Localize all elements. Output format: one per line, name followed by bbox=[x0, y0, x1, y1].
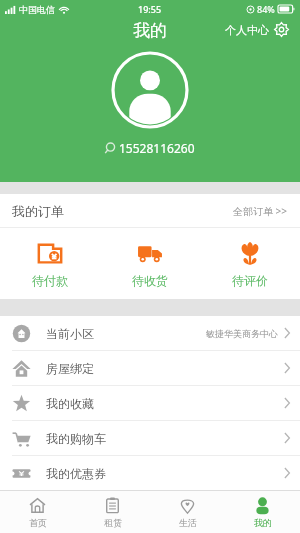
button[interactable]: 首页 bbox=[0, 491, 75, 533]
staticText: 我的优惠券 bbox=[46, 466, 106, 481]
staticText: 我的收藏 bbox=[46, 396, 94, 411]
button[interactable]: 我的收藏 bbox=[0, 386, 300, 420]
staticText: 15528116260 bbox=[119, 140, 195, 156]
staticText: 待评价 bbox=[232, 273, 268, 288]
staticText: 待付款 bbox=[32, 273, 68, 288]
staticText: 待收货 bbox=[132, 273, 168, 288]
button[interactable]: Avatar bbox=[111, 51, 189, 129]
button[interactable]: 待收货 bbox=[100, 228, 200, 299]
staticText: 个人中心 bbox=[225, 23, 269, 37]
staticText: 全部订单 >> bbox=[233, 204, 288, 218]
button[interactable]: 租赁 bbox=[75, 491, 150, 533]
button[interactable]: 我的订单 bbox=[0, 194, 300, 227]
staticText: 我的购物车 bbox=[46, 431, 106, 446]
staticText: 生活 bbox=[179, 517, 197, 528]
staticText: 租赁 bbox=[104, 517, 122, 528]
button[interactable]: 个人中心 bbox=[222, 20, 292, 39]
button[interactable]: 当前小区 bbox=[0, 316, 300, 350]
button[interactable]: 待评价 bbox=[200, 228, 300, 299]
button[interactable]: 我的优惠券 bbox=[0, 456, 300, 490]
button[interactable]: 我的 bbox=[225, 491, 300, 533]
button[interactable]: 待付款 bbox=[0, 228, 100, 299]
button[interactable]: 生活 bbox=[150, 491, 225, 533]
staticText: 中国电信 bbox=[19, 4, 55, 15]
staticText: 敏捷华美商务中心 bbox=[206, 328, 278, 339]
staticText: 首页 bbox=[29, 517, 47, 528]
other: Settings bbox=[274, 22, 289, 37]
staticText: 当前小区 bbox=[46, 326, 94, 341]
staticText: 我的 bbox=[254, 517, 272, 528]
button[interactable]: 房屋绑定 bbox=[0, 351, 300, 385]
staticText: 84% bbox=[257, 3, 275, 15]
staticText: 我的订单 bbox=[12, 203, 64, 219]
staticText: 我的 bbox=[133, 20, 167, 41]
staticText: 房屋绑定 bbox=[46, 361, 94, 376]
button[interactable]: 我的购物车 bbox=[0, 421, 300, 455]
staticText: 19:55 bbox=[138, 3, 162, 15]
